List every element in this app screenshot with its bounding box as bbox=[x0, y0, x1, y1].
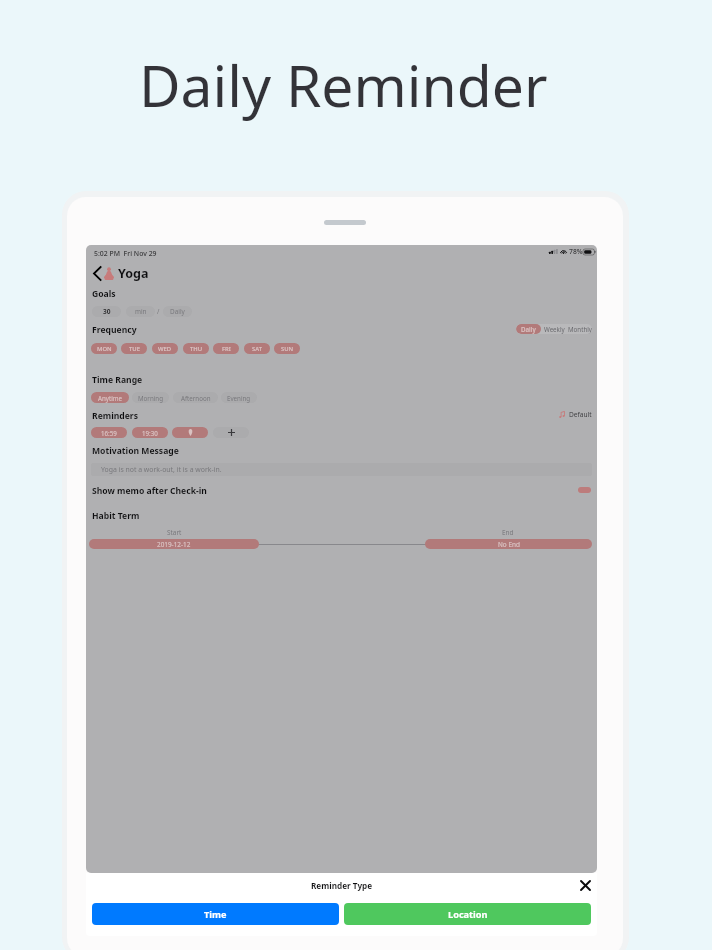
button[interactable]: MON bbox=[91, 343, 117, 354]
staticText: 19:30 bbox=[142, 429, 158, 437]
button[interactable]: min bbox=[126, 306, 155, 317]
staticText: Daily bbox=[521, 325, 536, 333]
staticText: / bbox=[157, 307, 160, 316]
staticText: End bbox=[502, 528, 514, 536]
button[interactable]: Daily bbox=[163, 306, 192, 317]
staticText: Yoga is not a work-out, it is a work-in. bbox=[101, 465, 222, 474]
staticText: Morning bbox=[138, 394, 163, 402]
staticText: 5:02 PM Fri Nov 29 bbox=[94, 249, 157, 258]
button[interactable]: 30 bbox=[92, 306, 121, 317]
button[interactable]: Show memo toggle bbox=[578, 487, 591, 493]
staticText: Location bbox=[448, 908, 488, 921]
staticText: SAT bbox=[252, 345, 262, 353]
button[interactable]: 16:59 bbox=[91, 427, 127, 438]
button[interactable]: No End bbox=[425, 539, 592, 549]
button[interactable]: Default bbox=[559, 408, 592, 420]
button[interactable]: Yoga is not a work-out, it is a work-in. bbox=[91, 463, 592, 476]
staticText: SUN bbox=[281, 345, 294, 353]
staticText: Yoga bbox=[118, 265, 149, 282]
staticText: Daily Reminder bbox=[139, 46, 548, 124]
staticText: Weekly bbox=[544, 325, 565, 333]
staticText: Default bbox=[569, 410, 592, 419]
button[interactable]: 19:30 bbox=[132, 427, 168, 438]
button[interactable]: Anytime bbox=[91, 392, 129, 403]
staticText: 2019-12-12 bbox=[157, 540, 191, 549]
staticText: TUE bbox=[129, 345, 140, 353]
staticText: FRI bbox=[222, 345, 231, 353]
button[interactable]: TUE bbox=[121, 343, 147, 354]
staticText: Monthly bbox=[568, 325, 592, 333]
button[interactable]: Back to Yoga bbox=[93, 265, 151, 282]
button[interactable]: WED bbox=[152, 343, 178, 354]
button[interactable]: Morning bbox=[132, 392, 169, 403]
staticText: Goals bbox=[92, 288, 116, 300]
staticText: No End bbox=[498, 540, 520, 549]
staticText: MON bbox=[97, 345, 112, 353]
staticText: Show memo after Check-in bbox=[92, 485, 207, 497]
button[interactable]: Location bbox=[344, 903, 591, 925]
staticText: 78% bbox=[569, 247, 583, 256]
button[interactable]: Location reminder bbox=[172, 427, 208, 438]
staticText: THU bbox=[190, 345, 203, 353]
button[interactable]: THU bbox=[183, 343, 209, 354]
button[interactable]: SAT bbox=[244, 343, 270, 354]
button[interactable]: Evening bbox=[221, 392, 257, 403]
staticText: Motivation Message bbox=[92, 445, 179, 457]
button[interactable]: 2019-12-12 bbox=[89, 539, 259, 549]
staticText: Anytime bbox=[98, 394, 123, 402]
staticText: min bbox=[135, 307, 147, 316]
staticText: Afternoon bbox=[181, 394, 211, 402]
staticText: Daily bbox=[170, 307, 185, 316]
staticText: 30 bbox=[103, 307, 111, 316]
button[interactable]: FRI bbox=[213, 343, 239, 354]
staticText: Habit Term bbox=[92, 510, 140, 522]
button[interactable]: Add reminder bbox=[213, 427, 249, 438]
staticText: Time Range bbox=[92, 374, 143, 386]
button[interactable]: Time bbox=[92, 903, 339, 925]
staticText: 16:59 bbox=[101, 429, 117, 437]
button[interactable]: Close bbox=[577, 877, 593, 893]
button[interactable]: SUN bbox=[274, 343, 300, 354]
staticText: Evening bbox=[227, 394, 251, 402]
staticText: Time bbox=[204, 908, 227, 921]
staticText: Frequency bbox=[92, 324, 137, 336]
staticText: WED bbox=[158, 345, 172, 353]
staticText: Reminders bbox=[92, 410, 139, 422]
staticText: Start bbox=[167, 528, 182, 536]
button[interactable]: Daily bbox=[516, 324, 592, 334]
staticText: Reminder Type bbox=[311, 880, 373, 891]
button[interactable]: Afternoon bbox=[173, 392, 218, 403]
